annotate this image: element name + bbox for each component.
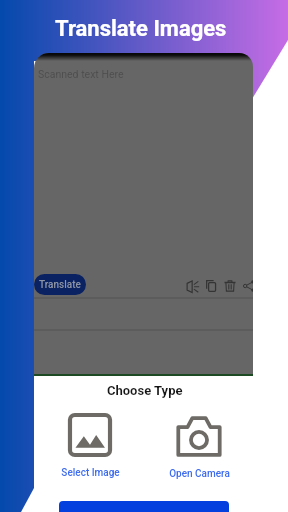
staticText: Translate Images <box>55 16 227 42</box>
staticText: Open Camera <box>169 468 230 480</box>
staticText: Scanned text Here <box>38 68 124 80</box>
button[interactable]: Open Camera <box>154 414 244 478</box>
staticText: Select Image <box>61 467 120 479</box>
button[interactable]: Delete <box>219 275 241 297</box>
staticText: Translate <box>39 279 81 291</box>
button[interactable]: Share <box>238 275 253 297</box>
button[interactable]: Translate <box>34 274 86 295</box>
button[interactable]: Copy <box>200 275 222 297</box>
button[interactable]: Speak <box>182 275 204 297</box>
button[interactable]: TRANSLATE <box>59 501 229 512</box>
staticText: Choose Type <box>107 383 183 398</box>
button[interactable]: Select Image <box>45 413 135 477</box>
